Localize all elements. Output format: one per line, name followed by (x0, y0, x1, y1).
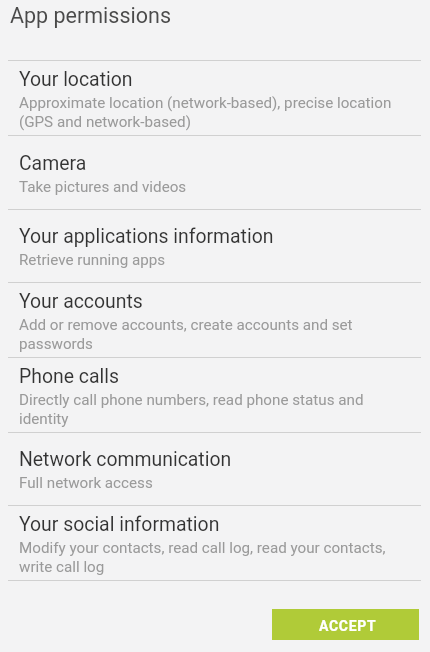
staticText: Modify your contacts, read call log, rea… (19, 539, 409, 576)
staticText: Directly call phone numbers, read phone … (19, 391, 409, 428)
button[interactable]: Phone calls (0, 358, 430, 432)
staticText: Your social information (19, 513, 220, 536)
staticText: Take pictures and videos (19, 178, 187, 196)
staticText: Full network access (19, 474, 153, 492)
button[interactable]: Your location (0, 61, 430, 135)
button[interactable]: Your accounts (0, 283, 430, 357)
staticText: App permissions (10, 3, 171, 28)
staticText: Retrieve running apps (19, 251, 166, 269)
button[interactable]: Your social information (0, 506, 430, 580)
staticText: Your accounts (19, 290, 143, 313)
staticText: Network communication (19, 448, 232, 471)
staticText: Camera (19, 152, 87, 175)
staticText: ACCEPT (319, 618, 377, 634)
button[interactable]: ACCEPT (272, 609, 419, 640)
button[interactable]: Your applications information (0, 210, 430, 282)
button[interactable]: Camera (0, 136, 430, 209)
staticText: Add or remove accounts, create accounts … (19, 316, 409, 353)
staticText: Your location (19, 68, 133, 91)
staticText: Phone calls (19, 365, 119, 388)
staticText: Your applications information (19, 225, 274, 248)
button[interactable]: Network communication (0, 433, 430, 505)
staticText: Approximate location (network-based), pr… (19, 94, 409, 131)
